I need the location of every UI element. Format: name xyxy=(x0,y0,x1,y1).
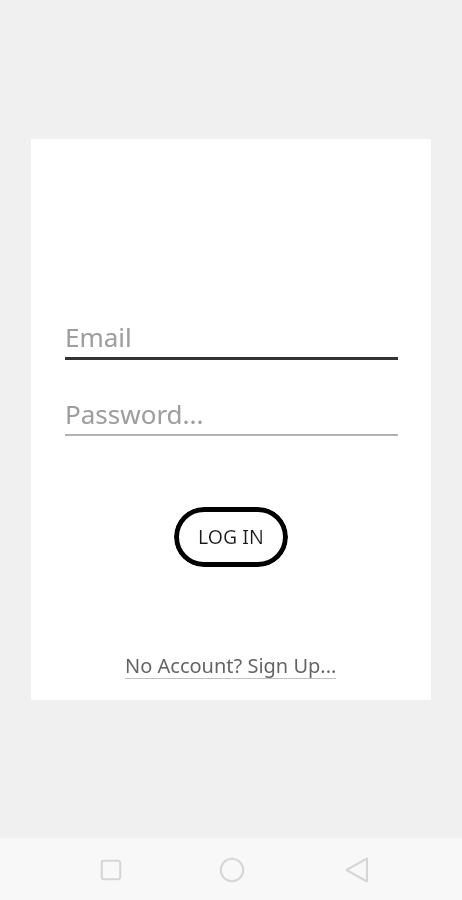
button[interactable]: Password... xyxy=(65,382,398,431)
staticText: Email xyxy=(65,319,132,354)
staticText: Password... xyxy=(65,396,204,431)
button[interactable]: Back xyxy=(335,847,381,893)
button[interactable]: Home xyxy=(209,847,255,893)
button[interactable]: LOG IN xyxy=(174,507,288,567)
staticText: No Account? Sign Up... xyxy=(125,652,337,679)
staticText: LOG IN xyxy=(198,523,264,550)
button[interactable]: Recent apps xyxy=(88,847,134,893)
button[interactable]: No Account? Sign Up... xyxy=(119,648,343,683)
button[interactable]: Email xyxy=(65,305,398,354)
